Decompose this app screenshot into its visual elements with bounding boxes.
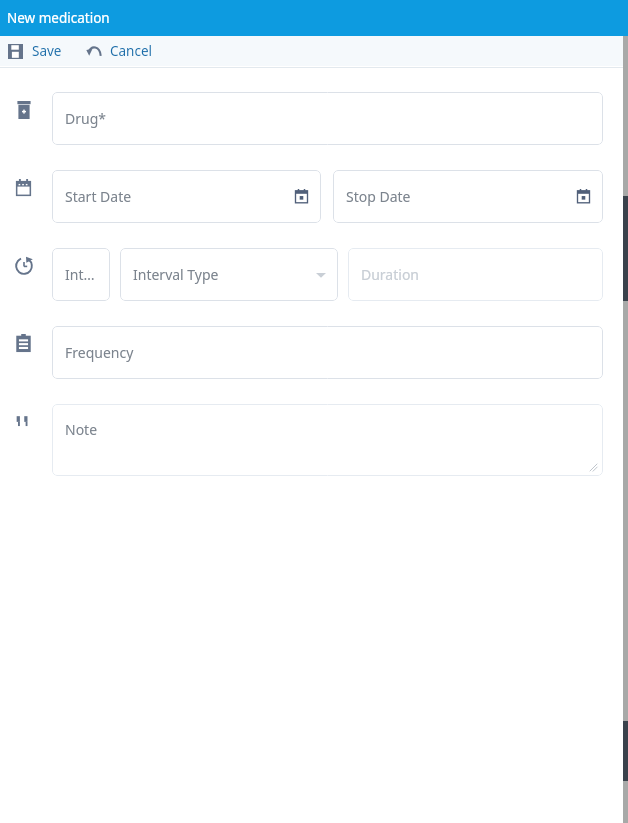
button[interactable]: Pick start date — [294, 189, 309, 204]
staticText: Interval Type — [133, 265, 219, 284]
button[interactable]: Note — [52, 404, 603, 476]
staticText: Note — [65, 420, 98, 439]
staticText: New medication — [7, 9, 110, 27]
button[interactable]: Pick stop date — [576, 189, 591, 204]
staticText: Save — [32, 42, 62, 60]
button[interactable]: Cancel — [86, 42, 153, 60]
staticText: Duration — [361, 265, 420, 284]
button[interactable]: Duration — [348, 248, 603, 301]
button[interactable]: Inter... — [52, 248, 110, 301]
staticText: Frequency — [65, 343, 134, 362]
button[interactable]: Drug* — [52, 92, 603, 145]
staticText: Cancel — [110, 42, 153, 60]
button[interactable]: Save — [8, 42, 62, 60]
staticText: Start Date — [65, 187, 132, 206]
button[interactable]: Interval Type — [120, 248, 338, 301]
staticText: Drug* — [65, 109, 106, 128]
button[interactable]: Stop Date — [333, 170, 603, 223]
button[interactable]: Frequency — [52, 326, 603, 379]
staticText: Stop Date — [346, 187, 411, 206]
button[interactable]: Start Date — [52, 170, 321, 223]
staticText: Inter... — [65, 265, 102, 284]
